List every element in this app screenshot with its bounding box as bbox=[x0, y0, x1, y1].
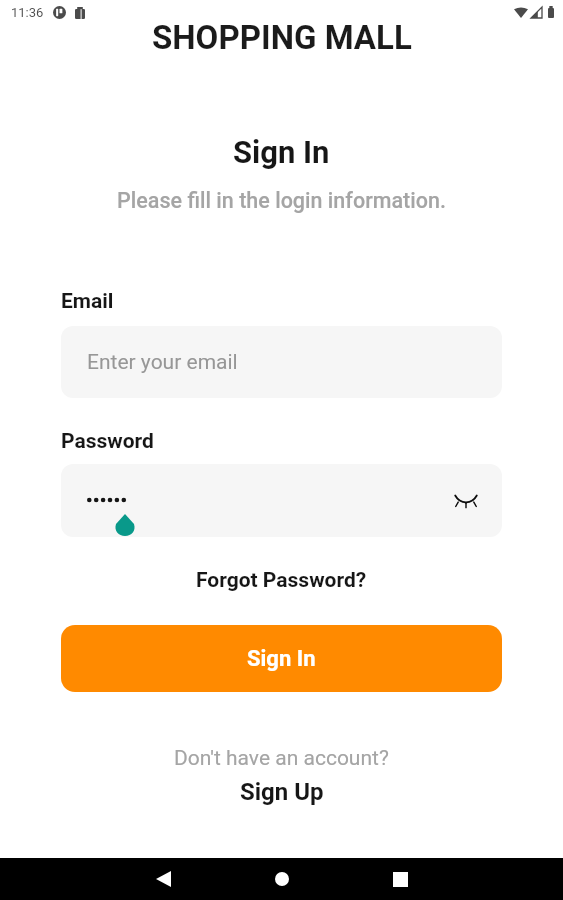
button[interactable]: Recents bbox=[379, 858, 421, 900]
staticText: Please fill in the login information. bbox=[117, 188, 446, 213]
staticText: Password bbox=[61, 429, 154, 454]
staticText: Email bbox=[61, 289, 114, 314]
staticText: Sign In bbox=[233, 134, 330, 170]
staticText: Enter your email bbox=[87, 350, 238, 375]
button[interactable]: Home bbox=[261, 858, 303, 900]
staticText: Sign Up bbox=[240, 778, 324, 806]
staticText: 11:36 bbox=[11, 5, 44, 20]
button[interactable]: Show password bbox=[444, 479, 488, 523]
staticText: Don't have an account? bbox=[174, 746, 389, 771]
button[interactable]: Show password bbox=[61, 464, 502, 537]
button[interactable]: Sign In bbox=[61, 625, 502, 692]
button[interactable]: Enter your email bbox=[61, 326, 502, 398]
staticText: Sign In bbox=[247, 646, 316, 672]
button[interactable]: Sign Up bbox=[234, 776, 330, 808]
staticText: SHOPPING MALL bbox=[152, 18, 412, 57]
button[interactable]: Back bbox=[142, 858, 184, 900]
staticText: Forgot Password? bbox=[196, 568, 367, 593]
button[interactable]: Forgot Password? bbox=[190, 564, 373, 597]
